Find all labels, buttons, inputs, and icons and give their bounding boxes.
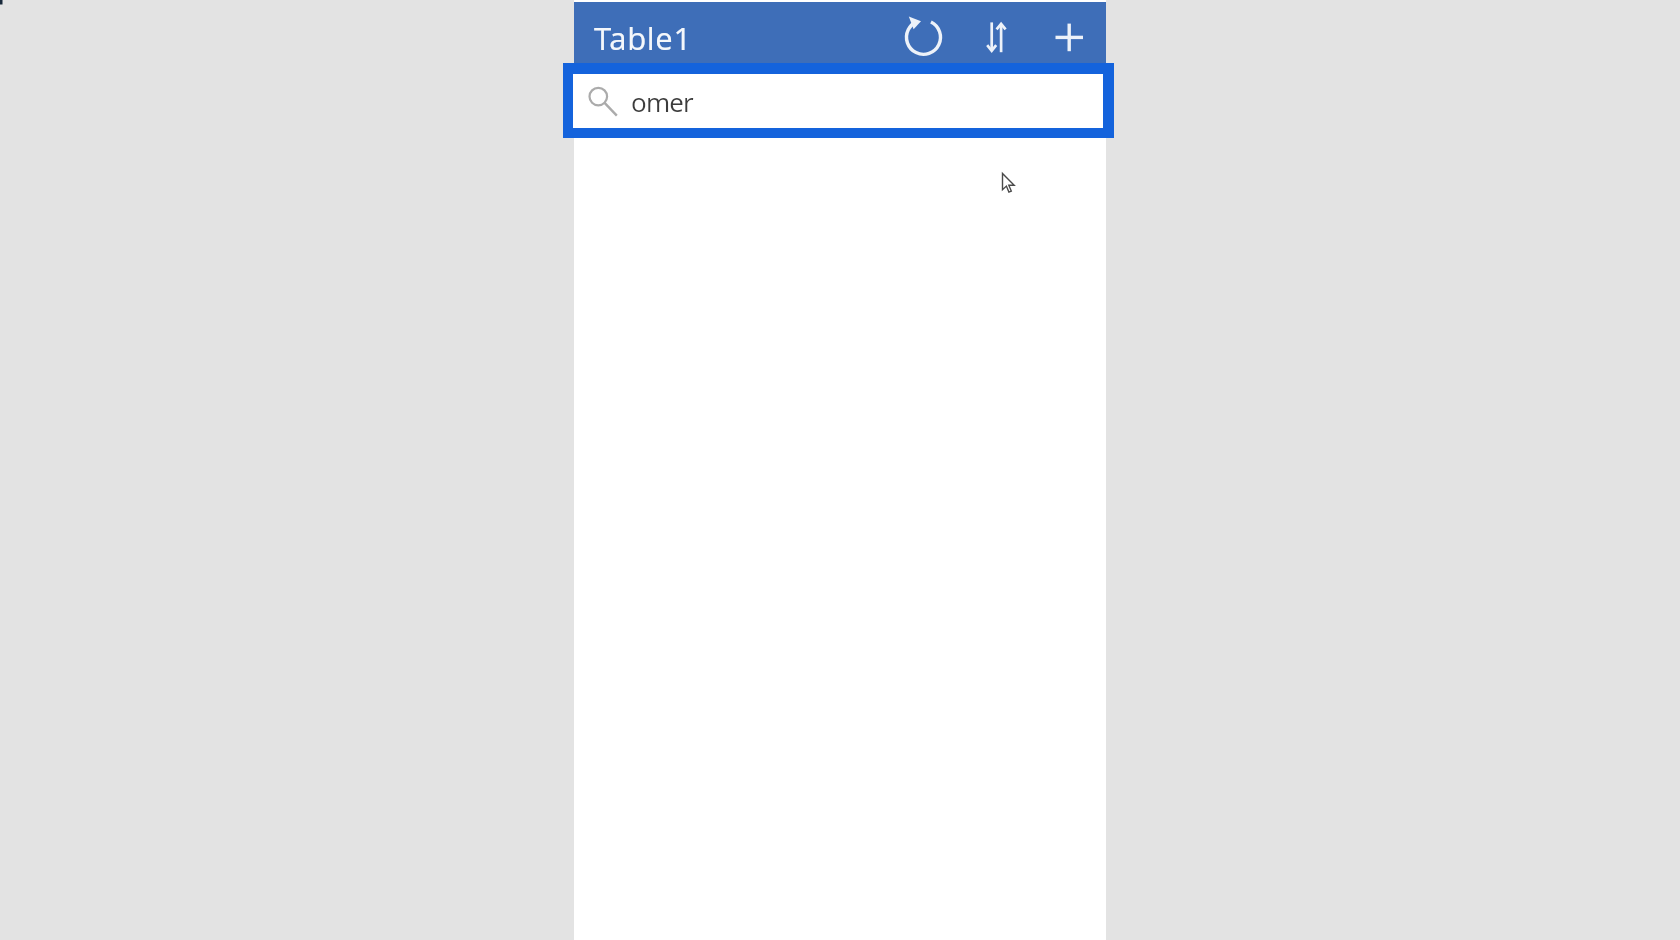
button[interactable] xyxy=(1048,16,1090,58)
button[interactable] xyxy=(903,16,945,58)
button[interactable] xyxy=(978,16,1020,58)
staticText: omer xyxy=(631,84,693,119)
button[interactable]: omer xyxy=(563,63,1114,138)
staticText: Table1 xyxy=(594,17,692,59)
